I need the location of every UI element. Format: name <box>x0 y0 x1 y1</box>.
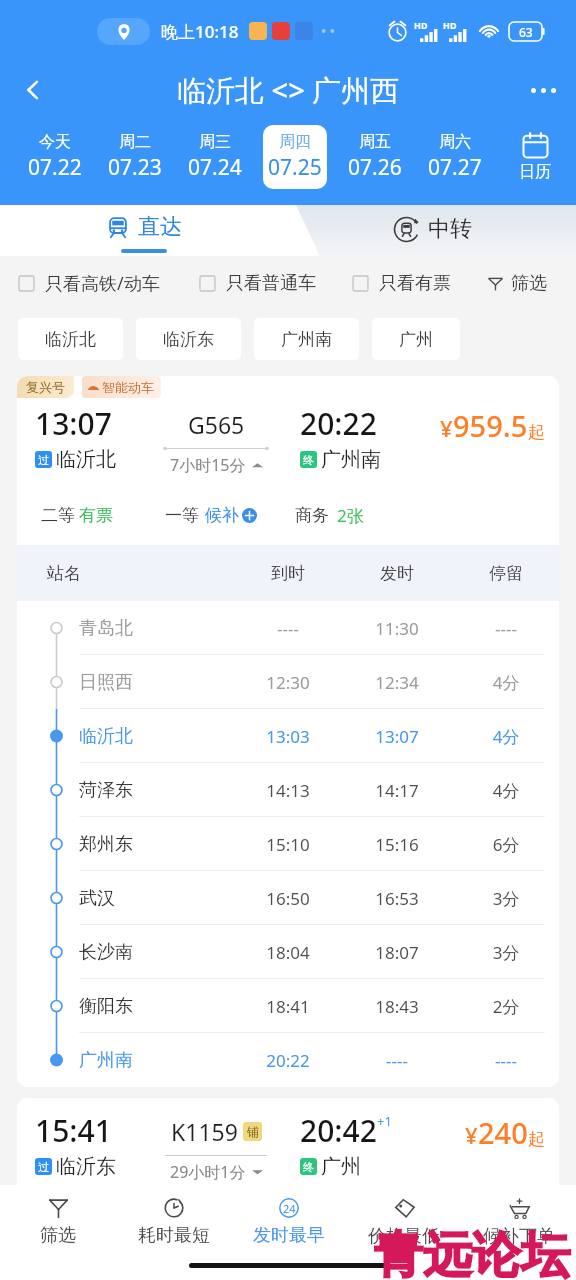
button[interactable]: 更多 <box>520 67 566 113</box>
button[interactable]: 周二 <box>103 125 167 189</box>
staticText: 到时 <box>243 563 333 584</box>
staticText: 18:04 <box>243 941 333 964</box>
staticText: ¥ <box>440 413 453 443</box>
staticText: 临沂北 <> 广州西 <box>177 70 400 110</box>
button[interactable]: 筛选 <box>488 272 547 295</box>
button[interactable]: 只看有票 <box>353 272 451 295</box>
staticText: 日照西 <box>79 671 133 694</box>
button[interactable]: 直达 <box>0 205 288 256</box>
staticText: 3分 <box>461 941 551 964</box>
staticText: HD <box>414 19 428 31</box>
staticText: 广州南 <box>79 1049 133 1072</box>
staticText: 13:07 <box>352 725 442 748</box>
staticText: 发时 <box>352 563 442 584</box>
staticText: 终 <box>303 1160 314 1174</box>
staticText: 临沂北 <box>45 329 96 350</box>
staticText: 晚上10:18 <box>161 20 239 43</box>
button[interactable]: 周六 <box>423 125 487 189</box>
staticText: 3分 <box>461 887 551 910</box>
staticText: ¥ <box>465 1120 478 1150</box>
button[interactable]: 返回 <box>10 67 56 113</box>
staticText: 周六 <box>439 132 471 152</box>
staticText: 过 <box>38 1160 49 1174</box>
staticText: 有票 <box>79 505 113 526</box>
button[interactable]: 价格最低 <box>346 1185 461 1254</box>
staticText: 只看普通车 <box>226 272 316 295</box>
staticText: 16:53 <box>352 887 442 910</box>
staticText: 广州南 <box>321 447 381 472</box>
staticText: 07.24 <box>188 153 242 182</box>
staticText: 周三 <box>199 132 231 152</box>
button[interactable]: 只看普通车 <box>200 272 316 295</box>
button[interactable]: 筛选 <box>0 1185 116 1254</box>
button[interactable]: 24 <box>231 1185 346 1254</box>
staticText: 一等 <box>165 505 199 526</box>
staticText: 周五 <box>359 132 391 152</box>
button[interactable]: 耗时最短 <box>116 1185 231 1254</box>
staticText: 站名 <box>47 563 81 584</box>
staticText: +1 <box>377 1112 392 1130</box>
staticText: 07.25 <box>268 153 322 182</box>
staticText: 18:43 <box>352 995 442 1018</box>
button[interactable]: 15:41 <box>17 1098 559 1228</box>
staticText: 4分 <box>461 671 551 694</box>
staticText: K1159 <box>171 1116 238 1147</box>
staticText: 15:41 <box>35 1110 112 1151</box>
button[interactable]: 候补下单 <box>461 1185 576 1254</box>
staticText: 临沂北 <box>79 725 133 748</box>
button[interactable]: 周四 <box>263 125 327 189</box>
staticText: 候补 <box>205 505 239 526</box>
staticText: 18:07 <box>352 941 442 964</box>
staticText: 商务 <box>295 505 329 526</box>
staticText: 中转 <box>428 215 472 243</box>
button[interactable]: 周三 <box>183 125 247 189</box>
button[interactable]: 周五 <box>343 125 407 189</box>
staticText: HD <box>443 19 457 31</box>
staticText: 复兴号 <box>26 379 65 395</box>
staticText: 武汉 <box>79 887 115 910</box>
staticText: 14:17 <box>352 779 442 802</box>
staticText: ---- <box>352 1049 442 1072</box>
staticText: 2分 <box>461 995 551 1018</box>
staticText: 今天 <box>39 132 71 152</box>
staticText: 07.26 <box>348 153 402 182</box>
staticText: 07.27 <box>428 153 482 182</box>
staticText: ---- <box>461 617 551 640</box>
staticText: 二等 <box>41 505 75 526</box>
staticText: 广州 <box>399 329 433 350</box>
button[interactable]: 今天 <box>23 125 87 189</box>
button[interactable]: 广州 <box>372 318 460 360</box>
staticText: 20:22 <box>243 1049 333 1072</box>
staticText: ---- <box>243 617 333 640</box>
staticText: 15:16 <box>352 833 442 856</box>
staticText: 11:30 <box>352 617 442 640</box>
button[interactable]: 只看高铁/动车 <box>19 271 160 296</box>
staticText: 只看有票 <box>379 272 451 295</box>
button[interactable]: 临沂北 <box>18 318 123 360</box>
staticText: 智能动车 <box>102 379 154 395</box>
staticText: 候补下单 <box>483 1225 555 1248</box>
staticText: 7小时15分 <box>170 454 246 476</box>
button[interactable]: 广州南 <box>254 318 359 360</box>
staticText: ---- <box>461 1049 551 1072</box>
staticText: 12:34 <box>352 671 442 694</box>
staticText: 6分 <box>461 833 551 856</box>
staticText: 07.22 <box>28 153 82 182</box>
staticText: 240 <box>478 1113 528 1152</box>
button[interactable]: 日历 <box>500 125 570 189</box>
staticText: 停留 <box>461 563 551 584</box>
staticText: 日历 <box>519 162 551 182</box>
staticText: 筛选 <box>40 1224 76 1247</box>
staticText: 临沂东 <box>163 329 214 350</box>
staticText: 周二 <box>119 132 151 152</box>
button[interactable]: 复兴号 <box>17 376 559 1087</box>
button[interactable]: 临沂东 <box>136 318 241 360</box>
staticText: 20:42 <box>300 1110 377 1151</box>
staticText: 菏泽东 <box>79 779 133 802</box>
staticText: 16:50 <box>243 887 333 910</box>
staticText: 14:13 <box>243 779 333 802</box>
button[interactable]: 中转 <box>288 205 576 256</box>
staticText: 2张 <box>337 504 364 527</box>
staticText: 4分 <box>461 725 551 748</box>
staticText: 筛选 <box>511 272 547 295</box>
